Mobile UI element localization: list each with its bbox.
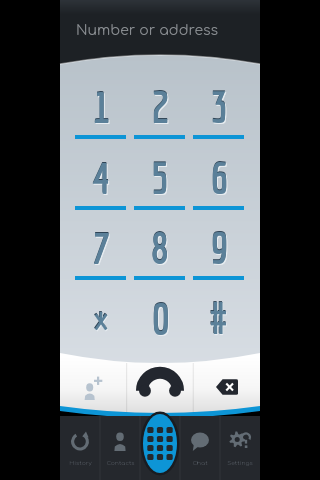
staticText: 9: [210, 223, 228, 272]
button[interactable]: Delete: [193, 362, 260, 412]
staticText: 0: [151, 293, 169, 342]
staticText: Settings: [227, 460, 253, 467]
staticText: 9: [210, 222, 228, 271]
button[interactable]: Chat: [180, 416, 220, 480]
staticText: 0: [151, 294, 169, 343]
staticText: 1: [92, 82, 110, 131]
button[interactable]: Keypad: [143, 414, 177, 473]
staticText: 2: [151, 82, 169, 131]
button[interactable]: 1: [74, 82, 127, 152]
staticText: 2: [151, 81, 169, 130]
staticText: 0: [152, 295, 170, 344]
staticText: 7: [92, 223, 110, 272]
staticText: 4: [93, 154, 111, 203]
button[interactable]: 3: [192, 82, 245, 152]
button[interactable]: 4: [74, 153, 127, 223]
staticText: 3: [210, 81, 228, 130]
staticText: 6: [210, 152, 228, 201]
staticText: 5: [152, 154, 170, 203]
button[interactable]: Call: [127, 362, 193, 412]
staticText: 4: [92, 152, 110, 201]
button[interactable]: History: [60, 416, 100, 480]
button[interactable]: [74, 294, 127, 364]
staticText: Contacts: [106, 460, 135, 467]
staticText: 7: [93, 224, 111, 273]
button[interactable]: Contacts: [100, 416, 140, 480]
button[interactable]: 6: [192, 153, 245, 223]
staticText: 1: [93, 83, 111, 132]
staticText: 8: [152, 224, 170, 273]
staticText: Number or address: [76, 23, 219, 39]
staticText: 5: [151, 153, 169, 202]
staticText: History: [69, 460, 92, 467]
staticText: 4: [92, 153, 110, 202]
staticText: 2: [152, 83, 170, 132]
staticText: 9: [211, 224, 229, 273]
button[interactable]: 2: [133, 82, 186, 152]
button[interactable]: [192, 294, 245, 364]
button[interactable]: Settings: [220, 416, 260, 480]
button[interactable]: 9: [192, 223, 245, 293]
button[interactable]: 0: [133, 294, 186, 364]
button[interactable]: 8: [133, 223, 186, 293]
staticText: 6: [211, 154, 229, 203]
staticText: 6: [210, 153, 228, 202]
staticText: 8: [151, 222, 169, 271]
staticText: 7: [92, 222, 110, 271]
button[interactable]: 5: [133, 153, 186, 223]
staticText: 3: [211, 83, 229, 132]
staticText: 8: [151, 223, 169, 272]
staticText: 5: [151, 152, 169, 201]
staticText: 1: [92, 81, 110, 130]
staticText: 3: [210, 82, 228, 131]
button[interactable]: Add contact: [60, 362, 127, 412]
button[interactable]: 7: [74, 223, 127, 293]
staticText: Chat: [192, 460, 208, 467]
